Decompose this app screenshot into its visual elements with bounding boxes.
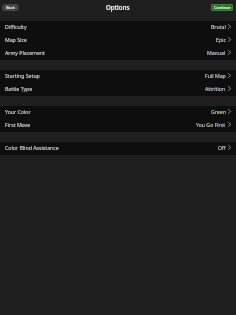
staticText: Army Placement (5, 49, 45, 56)
staticText: You Go First (196, 121, 226, 128)
staticText: Attrition (205, 85, 226, 92)
staticText: Difficulty (5, 23, 27, 30)
staticText: Brutal (211, 23, 226, 30)
button[interactable]: Map Size (0, 34, 236, 47)
staticText: Options (106, 3, 130, 11)
button[interactable]: Continue (211, 4, 233, 11)
staticText: Back (6, 5, 15, 10)
staticText: Epic (216, 36, 226, 43)
staticText: Off (218, 144, 226, 151)
staticText: Map Size (5, 36, 27, 43)
staticText: Manual (207, 49, 226, 56)
button[interactable]: Back (2, 4, 19, 11)
button[interactable]: Your Color (0, 106, 236, 119)
button[interactable]: Army Placement (0, 47, 236, 60)
staticText: First Move (5, 121, 31, 128)
staticText: Color Blind Assistance (5, 144, 59, 151)
staticText: Your Color (5, 108, 31, 115)
staticText: Continue (214, 5, 231, 10)
staticText: Battle Type (5, 85, 33, 92)
button[interactable]: Starting Setup (0, 70, 236, 83)
button[interactable]: Difficulty (0, 21, 236, 34)
button[interactable]: First Move (0, 119, 236, 132)
staticText: Green (211, 108, 226, 115)
button[interactable]: Battle Type (0, 83, 236, 96)
button[interactable]: Color Blind Assistance (0, 142, 236, 155)
staticText: Starting Setup (5, 72, 40, 79)
staticText: Full Map (205, 72, 226, 79)
